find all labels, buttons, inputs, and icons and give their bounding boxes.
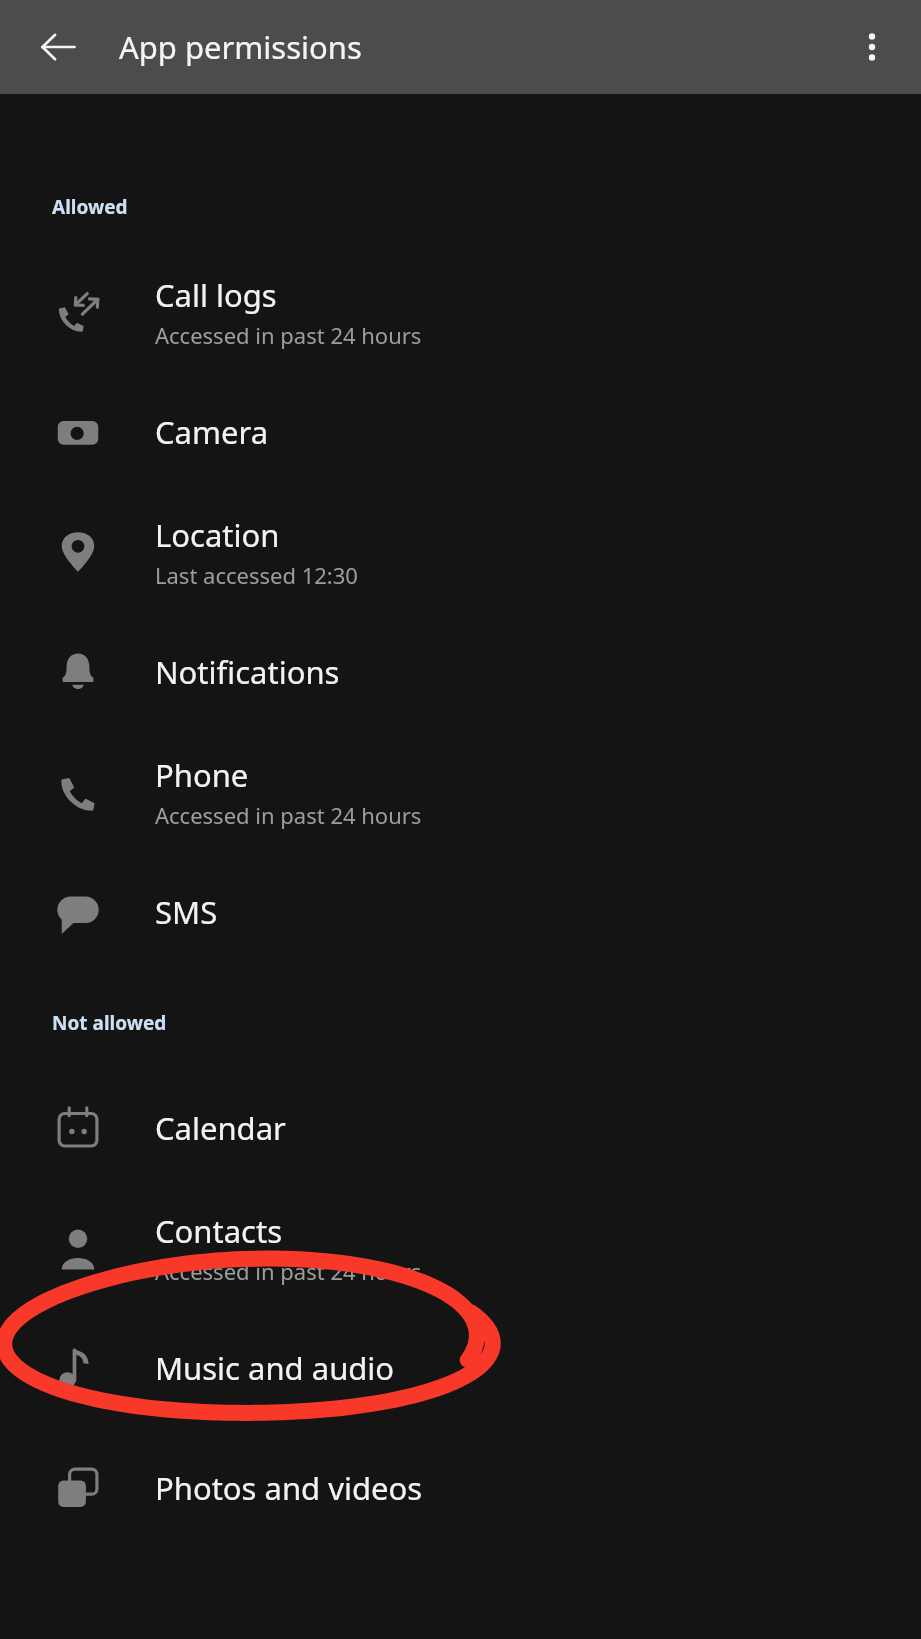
button[interactable]: More options (839, 14, 905, 80)
button[interactable]: Music and audio (0, 1308, 921, 1428)
staticText: Call logs (155, 274, 277, 316)
staticText: Location (155, 514, 280, 556)
staticText: Music and audio (155, 1347, 395, 1389)
staticText: Accessed in past 24 hours (155, 320, 422, 350)
staticText: Accessed in past 24 hours (155, 800, 422, 830)
staticText: Phone (155, 754, 249, 796)
button[interactable]: Photos and videos (0, 1428, 921, 1548)
button[interactable]: Location (0, 492, 921, 612)
staticText: App permissions (119, 26, 362, 68)
button[interactable]: Phone (0, 732, 921, 852)
button[interactable]: Contacts (0, 1188, 921, 1308)
staticText: Allowed (52, 194, 128, 220)
staticText: Notifications (155, 651, 340, 693)
staticText: Last accessed 12:30 (155, 560, 358, 590)
button[interactable]: Call logs (0, 252, 921, 372)
staticText: Photos and videos (155, 1467, 423, 1509)
button[interactable]: SMS (0, 852, 921, 972)
staticText: SMS (155, 891, 218, 933)
button[interactable]: Notifications (0, 612, 921, 732)
staticText: Contacts (155, 1210, 283, 1252)
button[interactable]: Calendar (0, 1068, 921, 1188)
button[interactable]: Back (24, 13, 92, 81)
staticText: Calendar (155, 1107, 286, 1149)
staticText: Accessed in past 24 hours (155, 1256, 422, 1286)
staticText: Camera (155, 411, 269, 453)
staticText: Not allowed (52, 1010, 167, 1036)
button[interactable]: Camera (0, 372, 921, 492)
